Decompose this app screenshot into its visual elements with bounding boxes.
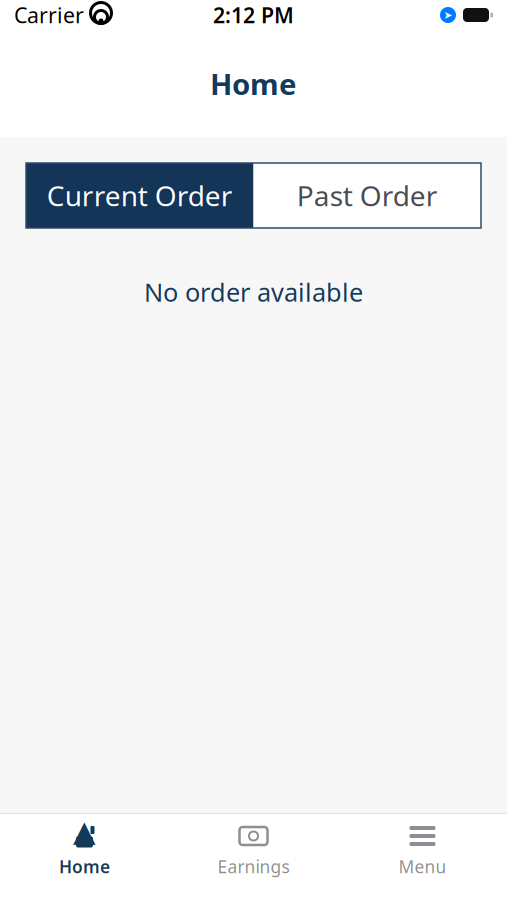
staticText: Home bbox=[210, 64, 297, 103]
button[interactable]: Current Order bbox=[26, 163, 253, 228]
staticText: Home bbox=[59, 855, 110, 878]
staticText: Past Order bbox=[297, 177, 438, 214]
staticText: 2:12 PM bbox=[213, 1, 294, 29]
staticText: Carrier bbox=[14, 1, 84, 29]
staticText: No order available bbox=[144, 275, 363, 309]
button[interactable]: Past Order bbox=[253, 163, 481, 228]
staticText: ➤ bbox=[443, 9, 452, 21]
staticText: Current Order bbox=[47, 177, 233, 214]
staticText: Menu bbox=[398, 855, 446, 878]
button[interactable]: Earnings bbox=[169, 814, 338, 886]
staticText: Earnings bbox=[217, 855, 289, 878]
button[interactable]: Menu bbox=[338, 814, 507, 886]
button[interactable]: ▲ bbox=[0, 814, 169, 886]
staticText: ▲ bbox=[73, 814, 96, 848]
